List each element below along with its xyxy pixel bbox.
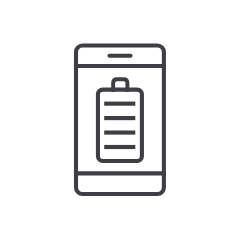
button[interactable]: Phone battery status (0, 0, 240, 240)
